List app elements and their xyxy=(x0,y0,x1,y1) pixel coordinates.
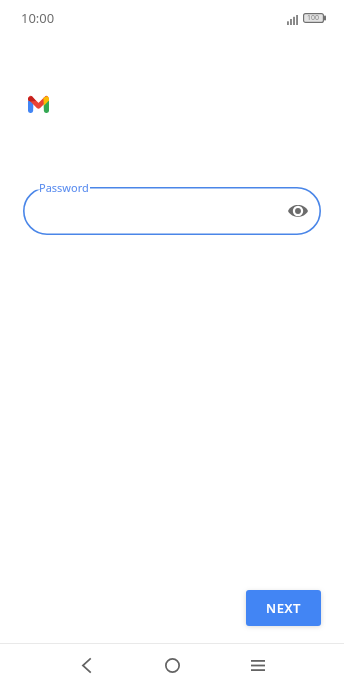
staticText: NEXT xyxy=(266,599,301,617)
button[interactable]: Show password xyxy=(284,197,312,225)
button[interactable]: NEXT xyxy=(246,590,321,626)
staticText: 10:00 xyxy=(21,9,55,27)
button[interactable]: Recent apps xyxy=(215,643,301,688)
button[interactable]: Show password xyxy=(23,187,321,235)
button[interactable]: Back xyxy=(43,643,129,688)
staticText: 100 xyxy=(307,13,320,23)
button[interactable]: Home xyxy=(129,643,215,688)
staticText: Password xyxy=(39,180,89,195)
